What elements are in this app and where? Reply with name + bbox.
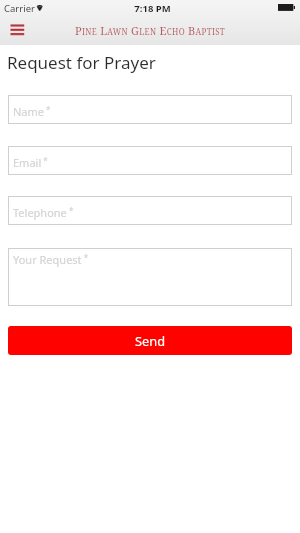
staticText: Telephone * — [13, 205, 74, 221]
staticText: Email * — [13, 155, 48, 171]
staticText: PINE LAWN GLEN ECHO BAPTIST — [75, 23, 226, 38]
button[interactable]: Name * — [8, 95, 292, 124]
staticText: Send — [135, 332, 166, 349]
staticText: Your Request * — [13, 252, 89, 268]
button[interactable]: Email * — [8, 146, 292, 175]
button[interactable]: Telephone * — [8, 196, 292, 225]
button[interactable]: Your Request * — [8, 248, 292, 306]
button[interactable]: Send — [8, 326, 292, 355]
staticText: Request for Prayer — [7, 51, 156, 74]
staticText: Carrier — [4, 2, 35, 15]
staticText: Name * — [13, 104, 51, 120]
staticText: 7:18 PM — [134, 2, 171, 15]
button[interactable]: Menu — [5, 21, 29, 39]
